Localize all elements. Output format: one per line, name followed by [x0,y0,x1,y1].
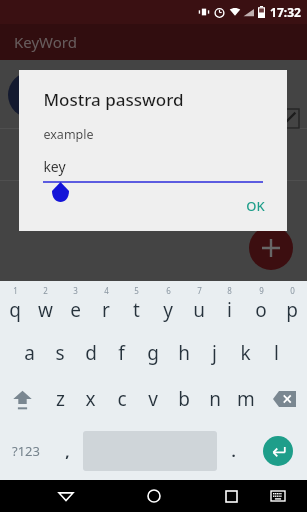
button[interactable]: 7 [183,281,214,330]
button[interactable]: j [199,330,230,376]
button[interactable]: l [261,330,292,376]
staticText: 4 [104,285,109,296]
staticText: a [24,340,35,366]
staticText: y [163,297,173,323]
button[interactable]: 5 [121,281,152,330]
staticText: example [43,126,94,143]
staticText: l [274,340,279,366]
button[interactable]: Back [50,480,82,512]
button[interactable]: 6 [152,281,183,330]
button[interactable]: Add [249,226,293,270]
staticText: k [240,340,251,366]
button[interactable]: m [230,376,261,422]
staticText: 5 [134,285,139,296]
staticText: s [55,340,65,366]
staticText: q [9,297,21,323]
button[interactable]: x [75,376,106,422]
staticText: n [209,386,221,412]
staticText: d [85,340,97,366]
staticText: x [85,386,96,412]
button[interactable]: Enter [249,422,307,480]
staticText: c [117,386,127,412]
staticText: ?123 [12,442,40,460]
button[interactable]: ?123 [0,422,51,480]
button[interactable]: z [45,376,75,422]
staticText: 0 [290,285,295,296]
button[interactable]: 8 [214,281,245,330]
staticText: m [237,386,255,412]
button[interactable]: s [44,330,75,376]
staticText: 7 [197,285,202,296]
staticText: , [65,441,70,461]
staticText: e [70,297,81,323]
staticText: 2 [43,285,48,296]
button[interactable]: 4 [90,281,121,330]
button[interactable]: d [75,330,106,376]
staticText: w [38,297,53,323]
button[interactable]: Home [138,480,170,512]
staticText: f [118,340,125,366]
staticText: 1 [13,285,18,296]
staticText: OK [246,197,265,215]
staticText: h [178,340,190,366]
button[interactable]: . [217,422,249,480]
button[interactable]: 0 [276,281,307,330]
staticText: 8 [227,285,232,296]
button[interactable]: v [137,376,168,422]
button[interactable]: n [199,376,230,422]
button[interactable]: b [168,376,199,422]
staticText: g [147,340,159,366]
staticText: . [231,441,236,461]
button[interactable]: Recents [215,480,247,512]
button[interactable]: , [51,422,83,480]
staticText: 3 [73,285,78,296]
staticText: r [102,297,110,323]
button[interactable]: Keyboard [265,483,291,509]
button[interactable]: Shift [0,376,45,422]
button[interactable]: OK [246,197,265,215]
staticText: t [133,297,140,323]
staticText: 9 [259,285,264,296]
button[interactable]: 1 [0,281,30,330]
button[interactable]: 9 [245,281,276,330]
button[interactable]: Edit [279,108,300,129]
staticText: p [286,297,298,323]
button[interactable]: k [230,330,261,376]
staticText: z [56,386,65,412]
staticText: u [193,297,205,323]
staticText: v [148,386,158,412]
button[interactable]: Backspace [261,376,307,422]
staticText: 6 [166,285,171,296]
staticText: o [255,297,267,323]
staticText: b [178,386,190,412]
button[interactable]: g [137,330,168,376]
staticText: i [227,297,232,323]
staticText: 17:32 [270,4,301,20]
button[interactable]: f [106,330,137,376]
staticText: Mostra password [43,88,184,111]
button[interactable]: 3 [60,281,90,330]
staticText: KeyWord [14,32,77,52]
staticText: key [43,157,66,176]
staticText: j [212,340,217,366]
button[interactable]: 2 [30,281,60,330]
button[interactable]: a [14,330,44,376]
button[interactable]: h [168,330,199,376]
button[interactable]: c [106,376,137,422]
